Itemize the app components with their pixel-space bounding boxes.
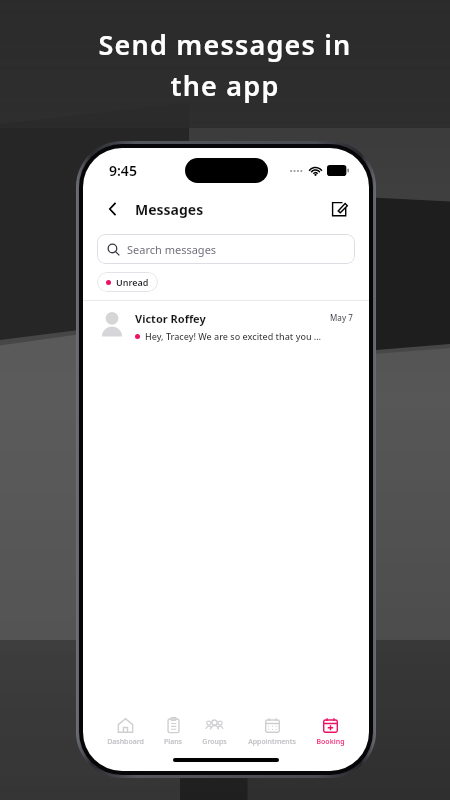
button[interactable]: Unread	[97, 272, 158, 292]
button[interactable]: Victor Roffey	[83, 301, 369, 352]
staticText: Dashboard	[107, 737, 144, 747]
button[interactable]: Dashboard	[105, 714, 146, 750]
button[interactable]: Back	[99, 195, 127, 223]
staticText: 9:45	[109, 161, 137, 180]
button[interactable]: Groups	[200, 714, 229, 750]
staticText: Booking	[316, 737, 345, 747]
staticText: Messages	[135, 200, 204, 219]
button[interactable]: Appointments	[246, 714, 298, 750]
staticText: May 7	[330, 312, 353, 323]
button[interactable]: Search messages	[97, 234, 355, 264]
staticText: Appointments	[248, 737, 296, 747]
staticText: Send messages in	[98, 26, 352, 63]
staticText: Victor Roffey	[135, 311, 206, 326]
button[interactable]: Compose message	[325, 195, 353, 223]
staticText: the app	[170, 67, 280, 104]
staticText: Hey, Tracey! We are so excited that you …	[145, 330, 324, 342]
button[interactable]: Booking	[314, 714, 347, 750]
staticText: Search messages	[127, 242, 217, 257]
staticText: Unread	[116, 276, 149, 288]
staticText: Groups	[202, 737, 227, 747]
staticText: Plans	[164, 737, 182, 747]
button[interactable]: Plans	[162, 714, 184, 750]
